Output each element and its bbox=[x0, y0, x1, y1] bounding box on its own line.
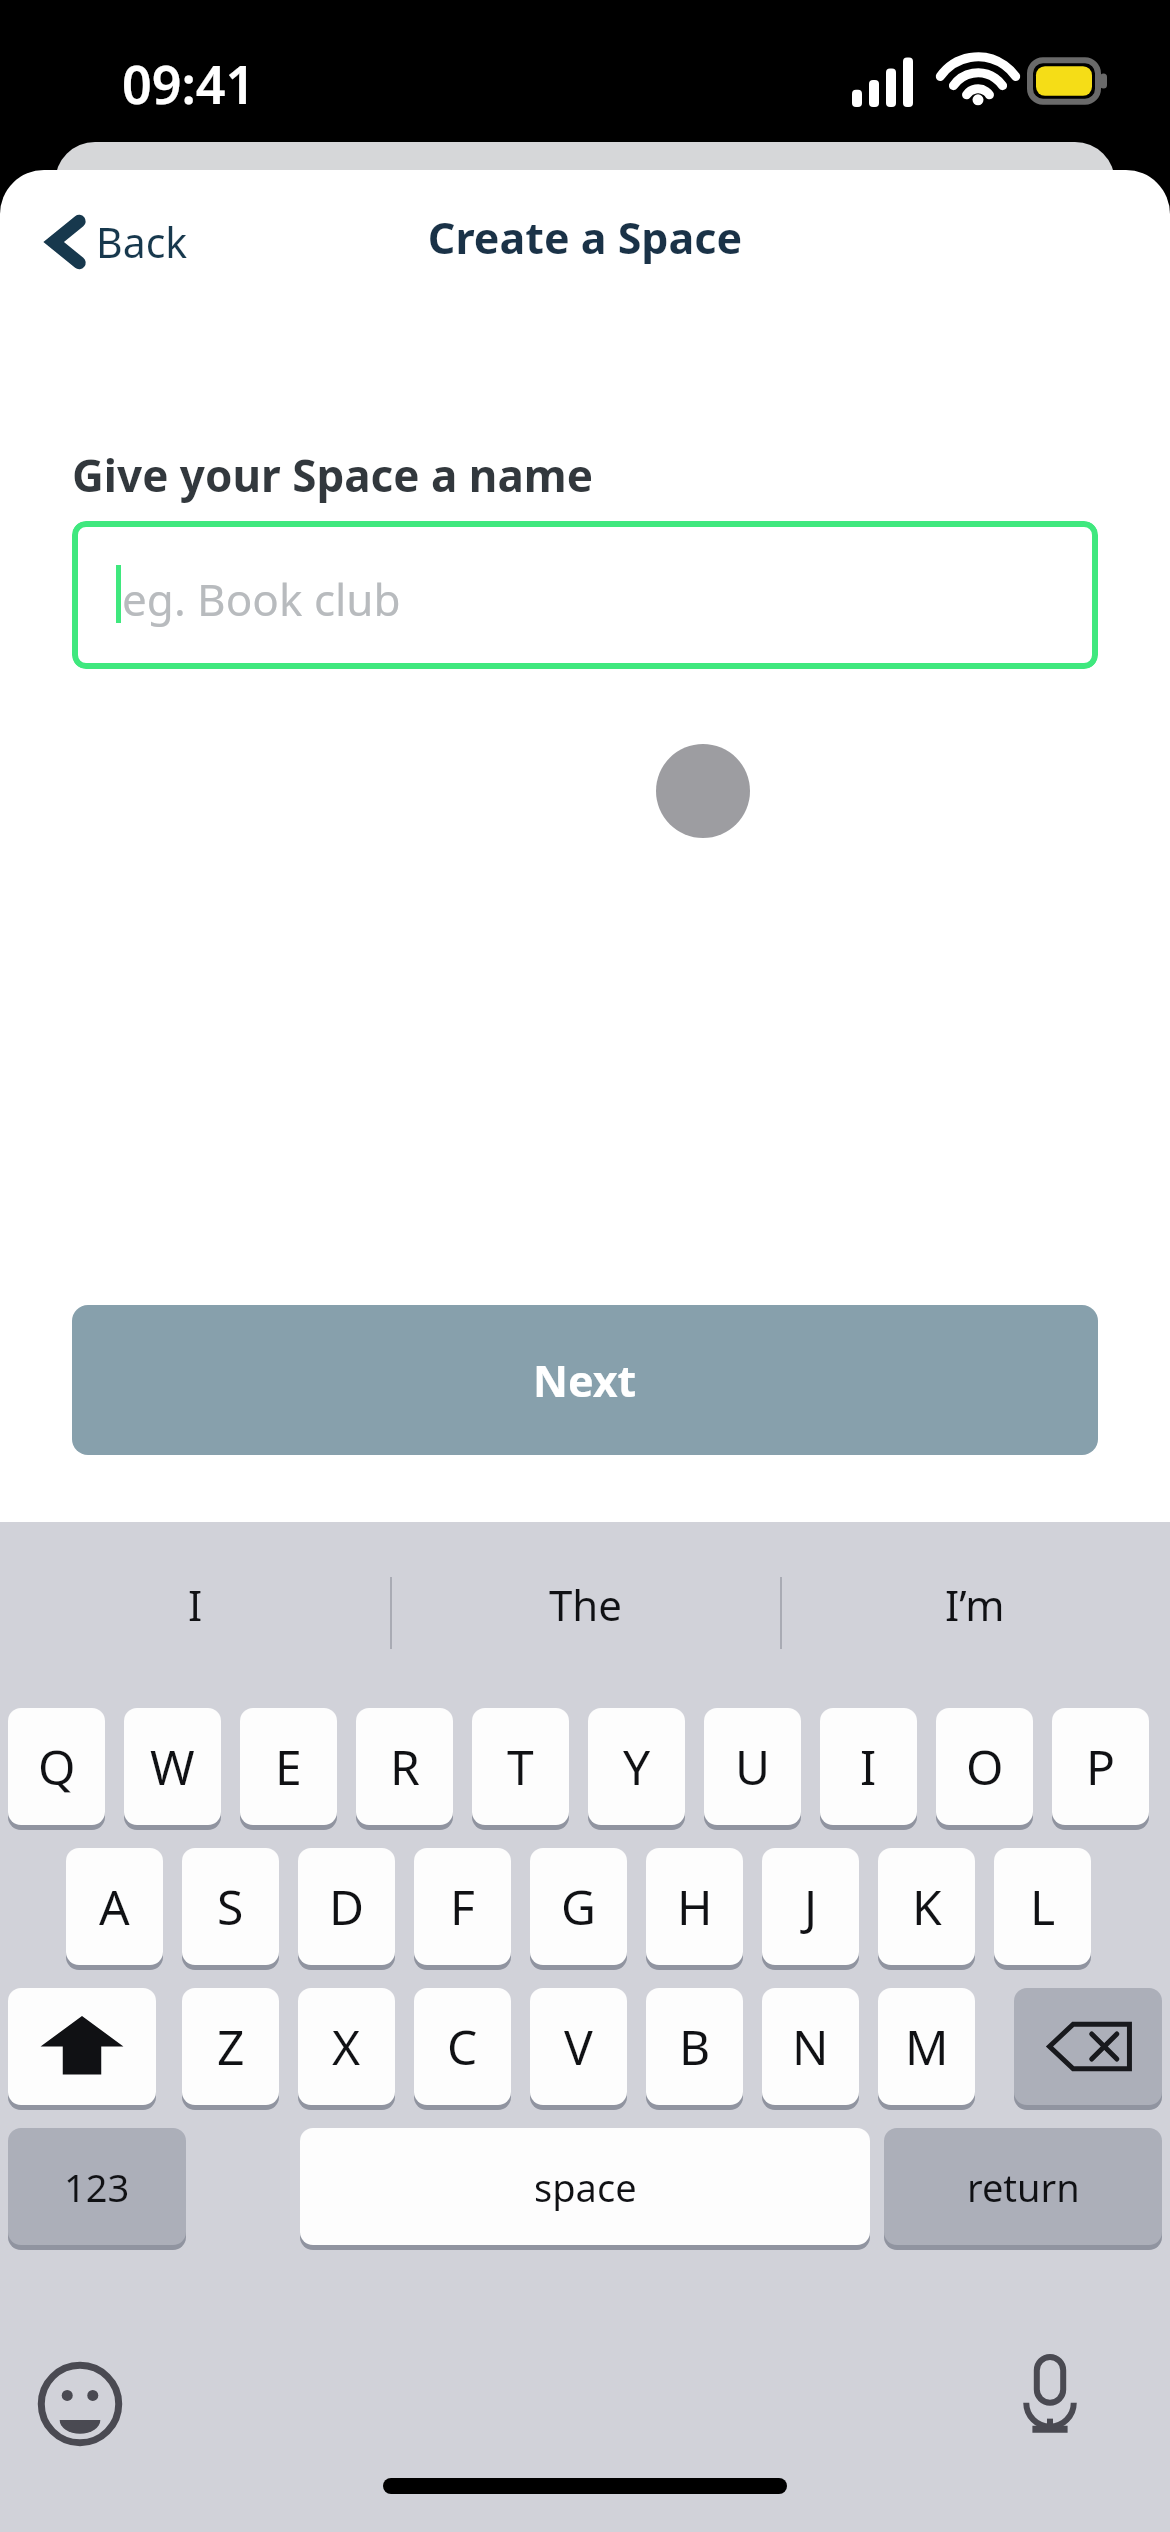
staticText: V bbox=[564, 2014, 593, 2079]
staticText: space bbox=[534, 2161, 637, 2213]
button[interactable]: G bbox=[530, 1848, 627, 1965]
staticText: U bbox=[735, 1734, 771, 1799]
button[interactable]: M bbox=[878, 1988, 975, 2105]
button[interactable]: Backspace bbox=[1014, 1988, 1162, 2105]
button[interactable]: R bbox=[356, 1708, 453, 1825]
staticText: Y bbox=[623, 1734, 651, 1799]
staticText: X bbox=[332, 2014, 361, 2079]
staticText: N bbox=[792, 2014, 829, 2079]
button[interactable]: H bbox=[646, 1848, 743, 1965]
staticText: J bbox=[804, 1874, 818, 1939]
button[interactable]: D bbox=[298, 1848, 395, 1965]
button[interactable]: E bbox=[240, 1708, 337, 1825]
button[interactable]: P bbox=[1052, 1708, 1149, 1825]
button[interactable]: Space bbox=[300, 2128, 870, 2245]
button[interactable]: F bbox=[414, 1848, 511, 1965]
staticText: I’m bbox=[945, 1576, 1005, 1633]
staticText: K bbox=[912, 1874, 942, 1939]
button[interactable]: T bbox=[472, 1708, 569, 1825]
button[interactable]: X bbox=[298, 1988, 395, 2105]
button[interactable]: Voice input bbox=[1006, 2350, 1094, 2438]
button[interactable]: N bbox=[762, 1988, 859, 2105]
button[interactable]: Q bbox=[8, 1708, 105, 1825]
button[interactable]: Shift bbox=[8, 1988, 156, 2105]
button[interactable]: K bbox=[878, 1848, 975, 1965]
staticText: P bbox=[1086, 1734, 1116, 1799]
staticText: S bbox=[217, 1874, 244, 1939]
staticText: M bbox=[905, 2014, 949, 2079]
staticText: C bbox=[447, 2014, 478, 2079]
staticText: W bbox=[150, 1734, 195, 1799]
staticText: H bbox=[677, 1874, 713, 1939]
staticText: O bbox=[966, 1734, 1004, 1799]
staticText: A bbox=[99, 1874, 130, 1939]
button[interactable]: S bbox=[182, 1848, 279, 1965]
staticText: D bbox=[329, 1874, 365, 1939]
staticText: Next bbox=[533, 1351, 637, 1410]
staticText: Give your Space a name bbox=[72, 445, 593, 505]
button[interactable]: B bbox=[646, 1988, 743, 2105]
button[interactable]: I bbox=[0, 1522, 390, 1687]
button[interactable]: Numbers bbox=[8, 2128, 186, 2245]
button[interactable]: I’m bbox=[780, 1522, 1170, 1687]
button[interactable]: V bbox=[530, 1988, 627, 2105]
button[interactable]: eg. Book club bbox=[72, 521, 1098, 669]
staticText: Create a Space bbox=[0, 208, 1170, 267]
staticText: T bbox=[507, 1734, 534, 1799]
staticText: E bbox=[275, 1734, 302, 1799]
button[interactable]: J bbox=[762, 1848, 859, 1965]
staticText: L bbox=[1030, 1874, 1056, 1939]
staticText: B bbox=[679, 2014, 711, 2079]
staticText: 123 bbox=[64, 2161, 130, 2213]
staticText: The bbox=[549, 1576, 622, 1633]
button[interactable]: W bbox=[124, 1708, 221, 1825]
staticText: R bbox=[390, 1734, 420, 1799]
button[interactable]: U bbox=[704, 1708, 801, 1825]
staticText: Back bbox=[96, 214, 188, 270]
staticText: Z bbox=[217, 2014, 245, 2079]
button[interactable]: O bbox=[936, 1708, 1033, 1825]
button[interactable]: Space avatar bbox=[656, 744, 750, 838]
button[interactable]: L bbox=[994, 1848, 1091, 1965]
staticText: F bbox=[450, 1874, 475, 1939]
staticText: Q bbox=[38, 1734, 76, 1799]
staticText: eg. Book club bbox=[122, 569, 401, 629]
button[interactable]: The bbox=[390, 1522, 780, 1687]
button[interactable]: Emoji keyboard bbox=[36, 2360, 124, 2448]
button[interactable]: Next bbox=[72, 1305, 1098, 1455]
staticText: 09:41 bbox=[122, 48, 256, 119]
button[interactable]: Z bbox=[182, 1988, 279, 2105]
staticText: G bbox=[561, 1874, 596, 1939]
button[interactable]: I bbox=[820, 1708, 917, 1825]
staticText: I bbox=[860, 1734, 877, 1799]
staticText: I bbox=[188, 1576, 203, 1633]
button[interactable]: Return bbox=[884, 2128, 1162, 2245]
button[interactable]: Back bbox=[34, 202, 198, 282]
button[interactable]: C bbox=[414, 1988, 511, 2105]
button[interactable]: Y bbox=[588, 1708, 685, 1825]
button[interactable]: A bbox=[66, 1848, 163, 1965]
staticText: return bbox=[967, 2161, 1080, 2213]
